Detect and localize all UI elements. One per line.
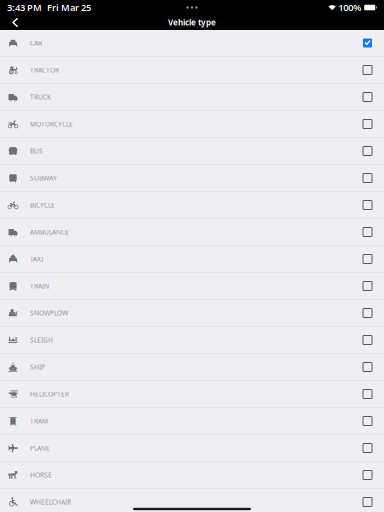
- button[interactable]: SHIP: [0, 354, 384, 381]
- button[interactable]: SUBWAY: [0, 165, 384, 192]
- staticText: 3:43 PM: [7, 1, 42, 14]
- staticText: TRAM: [30, 417, 48, 425]
- button[interactable]: WHEELCHAIR: [0, 489, 384, 512]
- staticText: SNOWPLOW: [30, 309, 68, 317]
- staticText: SLEIGH: [30, 336, 53, 344]
- button[interactable]: MOTORCYCLE: [0, 111, 384, 138]
- staticText: WHEELCHAIR: [30, 498, 71, 506]
- staticText: CAR: [30, 39, 42, 47]
- button[interactable]: PLANE: [0, 435, 384, 462]
- button[interactable]: TRACTOR: [0, 57, 384, 84]
- staticText: HORSE: [30, 471, 52, 479]
- button[interactable]: Back: [0, 14, 30, 30]
- button[interactable]: TRAIN: [0, 273, 384, 300]
- button[interactable]: HELICOPTER: [0, 381, 384, 408]
- staticText: SUBWAY: [30, 174, 57, 182]
- staticText: BUS: [30, 147, 43, 155]
- button[interactable]: TRAM: [0, 408, 384, 435]
- staticText: HELICOPTER: [30, 390, 69, 398]
- staticText: TRAIN: [30, 282, 49, 290]
- button[interactable]: TRUCK: [0, 84, 384, 111]
- button[interactable]: HORSE: [0, 462, 384, 489]
- staticText: AMBULANCE: [30, 228, 69, 236]
- button[interactable]: SNOWPLOW: [0, 300, 384, 327]
- staticText: SHIP: [30, 363, 45, 371]
- staticText: BICYCLE: [30, 201, 55, 209]
- button[interactable]: TAXI: [0, 246, 384, 273]
- staticText: TRACTOR: [30, 66, 59, 74]
- button[interactable]: AMBULANCE: [0, 219, 384, 246]
- button[interactable]: BICYCLE: [0, 192, 384, 219]
- staticText: TRUCK: [30, 93, 51, 101]
- staticText: TAXI: [30, 255, 43, 263]
- staticText: MOTORCYCLE: [30, 120, 73, 128]
- staticText: 100%: [338, 1, 361, 14]
- button[interactable]: BUS: [0, 138, 384, 165]
- button[interactable]: CAR: [0, 30, 384, 57]
- staticText: Fri Mar 25: [47, 1, 91, 14]
- staticText: Vehicle type: [168, 17, 216, 28]
- button[interactable]: SLEIGH: [0, 327, 384, 354]
- staticText: PLANE: [30, 444, 50, 452]
